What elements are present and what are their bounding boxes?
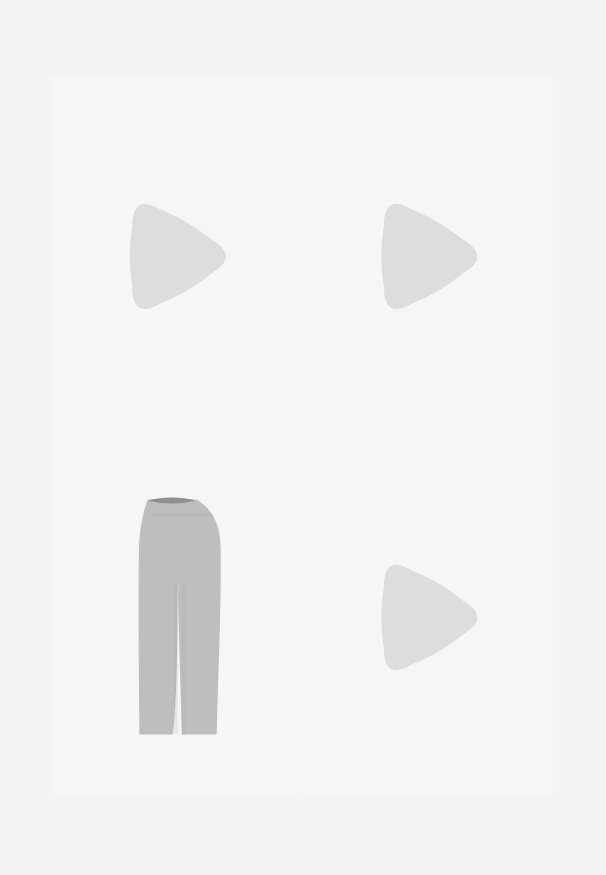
button[interactable] (301, 437, 553, 798)
button[interactable] (50, 437, 301, 798)
button[interactable] (301, 76, 553, 437)
button[interactable] (50, 76, 301, 437)
